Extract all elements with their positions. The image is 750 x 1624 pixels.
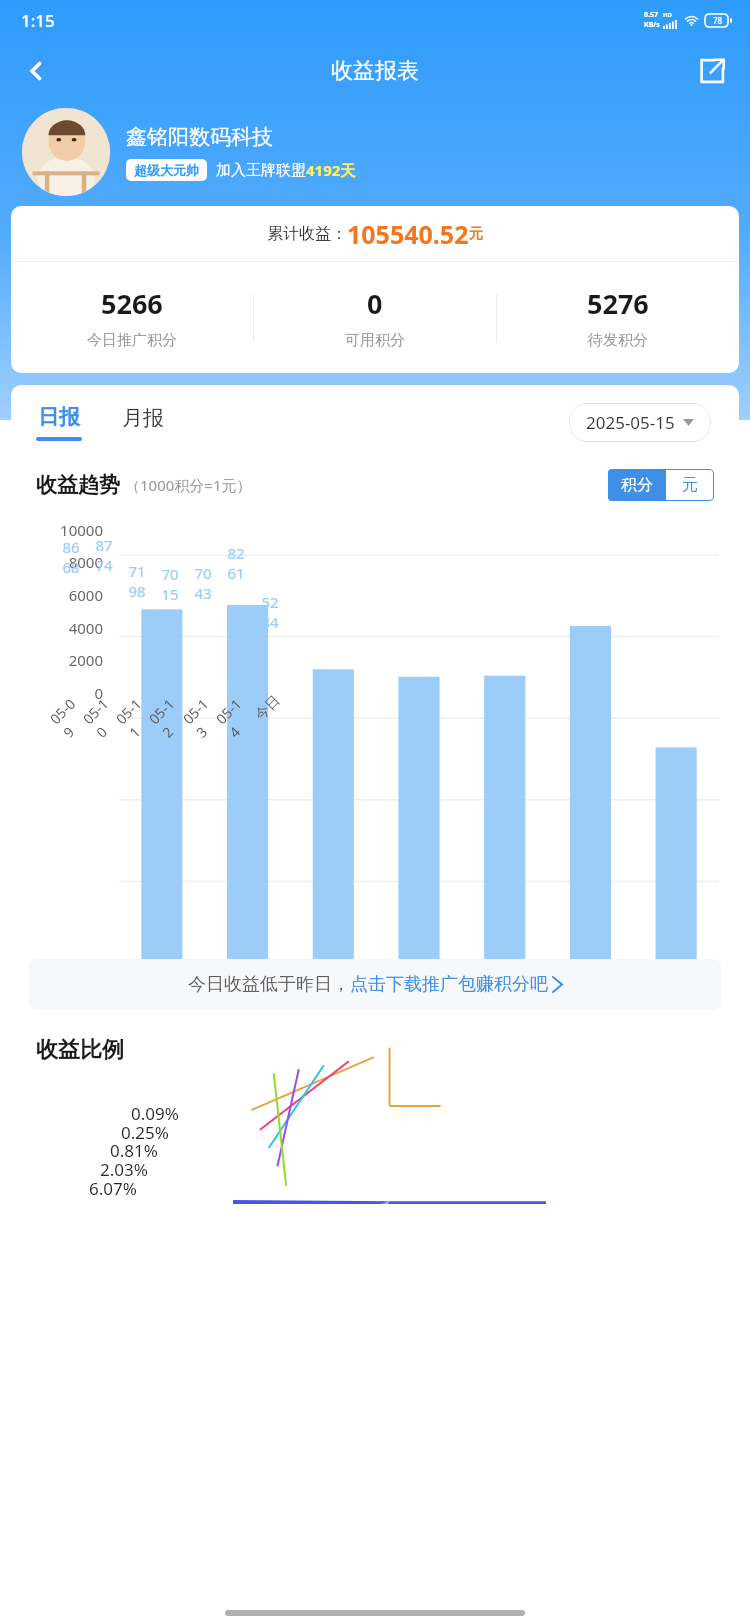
staticText: 0 bbox=[367, 285, 383, 322]
button[interactable]: 月报 bbox=[122, 404, 164, 431]
staticText: 超级大元帅 bbox=[134, 162, 199, 178]
staticText: 4000 bbox=[11, 618, 103, 638]
staticText: 加入王牌联盟 bbox=[216, 161, 306, 180]
staticText: 2025-05-15 bbox=[586, 411, 675, 434]
staticText: 日报 bbox=[38, 404, 80, 430]
button[interactable]: 日报 bbox=[36, 404, 82, 441]
staticText: （1000积分=1元） bbox=[125, 475, 252, 495]
button[interactable]: 5266 bbox=[11, 285, 253, 350]
staticText: HD bbox=[663, 11, 672, 19]
staticText: 0.57 bbox=[644, 10, 658, 20]
button[interactable]: 0 bbox=[254, 285, 496, 350]
staticText: 8668 bbox=[59, 537, 83, 577]
staticText: 2.03% bbox=[100, 1158, 148, 1181]
staticText: 累计收益： bbox=[267, 224, 347, 244]
staticText: 5276 bbox=[587, 285, 649, 322]
staticText: KB/s bbox=[644, 20, 660, 30]
staticText: 0.25% bbox=[121, 1121, 169, 1144]
staticText: 05-12 bbox=[144, 690, 195, 741]
staticText: 10000 bbox=[11, 520, 103, 540]
staticText: 105540.52 bbox=[347, 217, 469, 251]
staticText: 积分 bbox=[621, 475, 653, 495]
staticText: 8000 bbox=[11, 552, 103, 572]
staticText: 点击下载推广包赚积分吧 bbox=[350, 973, 548, 996]
staticText: 0 bbox=[11, 683, 103, 703]
staticText: 1:15 bbox=[21, 9, 55, 32]
staticText: 元 bbox=[469, 225, 483, 243]
staticText: 05-10 bbox=[78, 690, 129, 741]
staticText: 收益报表 bbox=[331, 57, 419, 85]
staticText: 0.09% bbox=[131, 1102, 179, 1125]
button[interactable]: 5276 bbox=[497, 285, 739, 350]
staticText: 7043 bbox=[191, 563, 215, 603]
staticText: 元 bbox=[682, 475, 698, 495]
staticText: 7198 bbox=[125, 561, 149, 601]
staticText: 78 bbox=[713, 15, 723, 26]
button[interactable]: Share bbox=[688, 47, 736, 95]
button[interactable]: 积分 bbox=[608, 469, 666, 501]
button[interactable]: Back bbox=[12, 47, 60, 95]
button[interactable]: 今日收益低于昨日， bbox=[29, 959, 721, 1010]
button[interactable]: Avatar bbox=[22, 108, 110, 196]
button[interactable]: 元 bbox=[666, 469, 714, 501]
staticText: 05-13 bbox=[178, 690, 229, 741]
staticText: 05-09 bbox=[45, 690, 96, 741]
staticText: 6000 bbox=[11, 585, 103, 605]
staticText: 今日推广积分 bbox=[87, 331, 177, 350]
staticText: 4192天 bbox=[306, 160, 356, 180]
staticText: 2000 bbox=[11, 650, 103, 670]
staticText: 待发积分 bbox=[588, 331, 648, 350]
staticText: 8261 bbox=[224, 543, 248, 583]
staticText: 今日 bbox=[252, 692, 284, 724]
staticText: 鑫铭阳数码科技 bbox=[126, 124, 273, 150]
staticText: 7015 bbox=[158, 564, 182, 604]
staticText: 5284 bbox=[258, 592, 282, 632]
staticText: 8774 bbox=[92, 535, 116, 575]
staticText: 收益趋势 bbox=[36, 472, 120, 498]
staticText: 可用积分 bbox=[345, 331, 405, 350]
staticText: 6.07% bbox=[89, 1177, 137, 1200]
staticText: 05-14 bbox=[211, 690, 262, 741]
staticText: 05-11 bbox=[111, 690, 162, 741]
staticText: 5266 bbox=[101, 285, 163, 322]
staticText: 月报 bbox=[122, 405, 164, 431]
staticText: 收益比例 bbox=[36, 1036, 124, 1064]
button[interactable]: 2025-05-15 bbox=[569, 403, 711, 442]
staticText: 0.81% bbox=[110, 1139, 158, 1162]
staticText: 今日收益低于昨日， bbox=[188, 973, 350, 996]
